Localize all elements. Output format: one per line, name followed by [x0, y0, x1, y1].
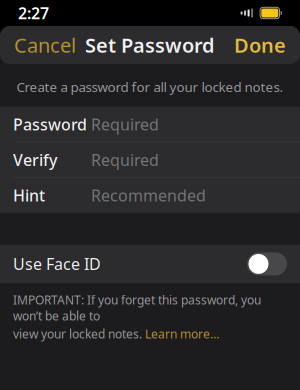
staticText: 2:27 [18, 2, 49, 24]
staticText: Learn more… [145, 326, 219, 342]
staticText: IMPORTANT: If you forget this password, … [13, 292, 261, 324]
button[interactable]: Use Face ID [0, 245, 300, 283]
staticText: Create a password for all your locked no… [16, 78, 283, 96]
staticText: view your locked notes. [13, 326, 145, 342]
staticText: Required [91, 149, 159, 170]
staticText: Cancel [14, 32, 76, 58]
staticText: Done [234, 32, 286, 58]
staticText: Set Password [85, 32, 215, 58]
button[interactable]: Password [0, 107, 300, 142]
button[interactable]: Cancel [0, 24, 90, 66]
button[interactable]: Learn more… [145, 326, 219, 342]
staticText: Verify [13, 149, 57, 170]
staticText: Password [13, 114, 87, 135]
staticText: Recommended [91, 185, 206, 206]
staticText: Required [91, 114, 159, 135]
button[interactable]: Done [220, 24, 300, 66]
staticText: Hint [13, 185, 45, 206]
button[interactable]: Hint [0, 178, 300, 213]
staticText: Use Face ID [13, 253, 101, 274]
button[interactable]: Verify [0, 142, 300, 177]
